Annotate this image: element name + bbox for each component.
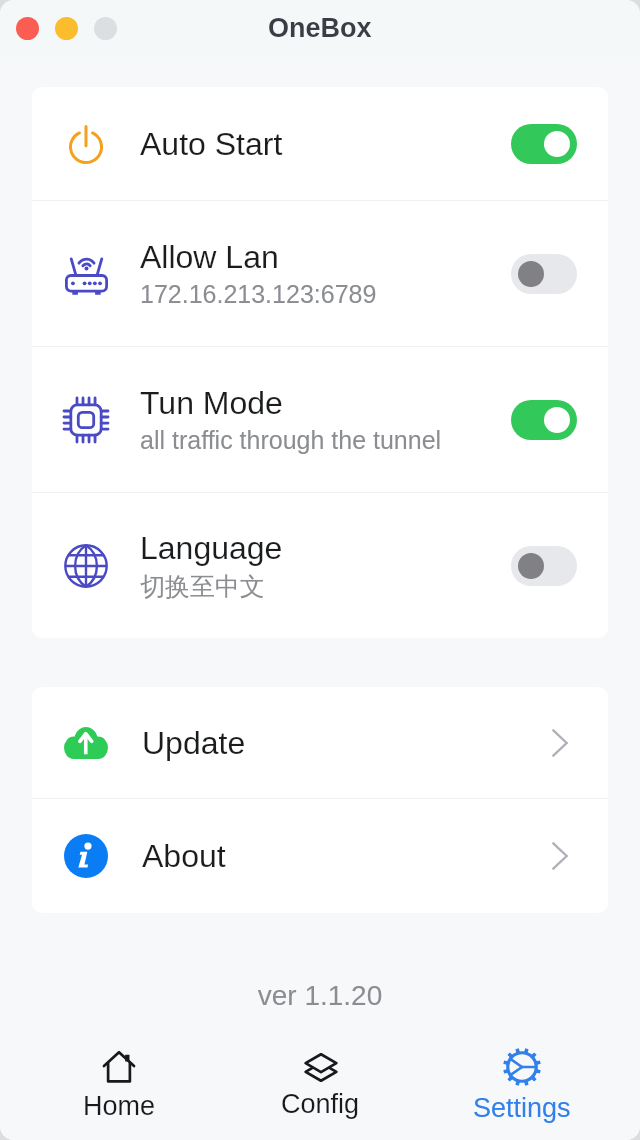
button[interactable]: Close xyxy=(16,17,39,40)
button[interactable]: Minimise xyxy=(55,17,78,40)
staticText: ver 1.1.20 xyxy=(0,980,640,1011)
staticText: 切换至中文 xyxy=(140,571,265,602)
button[interactable]: Toggle xyxy=(511,546,577,586)
button[interactable]: Maximise xyxy=(94,17,117,40)
button[interactable]: Update xyxy=(32,687,608,798)
staticText: About xyxy=(142,838,552,874)
button[interactable]: Toggle xyxy=(511,400,577,440)
staticText: all traffic through the tunnel xyxy=(140,426,442,454)
button[interactable]: Home xyxy=(18,1051,220,1121)
button[interactable]: Settings xyxy=(421,1049,622,1123)
button[interactable]: Toggle xyxy=(511,254,577,294)
staticText: Update xyxy=(142,725,552,761)
staticText: Tun Mode xyxy=(140,385,283,421)
button[interactable]: Tun Mode xyxy=(32,347,608,492)
staticText: OneBox xyxy=(268,13,372,43)
button[interactable]: Config xyxy=(220,1054,421,1119)
button[interactable]: Language xyxy=(32,493,608,638)
button[interactable]: Toggle xyxy=(511,124,577,164)
staticText: Language xyxy=(140,530,283,566)
button[interactable]: Allow Lan xyxy=(32,201,608,346)
button[interactable]: Auto Start xyxy=(32,87,608,200)
staticText: Settings xyxy=(473,1093,571,1123)
staticText: Allow Lan xyxy=(140,239,279,275)
staticText: Home xyxy=(83,1091,156,1121)
staticText: Auto Start xyxy=(140,126,283,162)
staticText: Config xyxy=(281,1089,360,1119)
staticText: 172.16.213.123:6789 xyxy=(140,280,377,308)
button[interactable]: About xyxy=(32,799,608,913)
